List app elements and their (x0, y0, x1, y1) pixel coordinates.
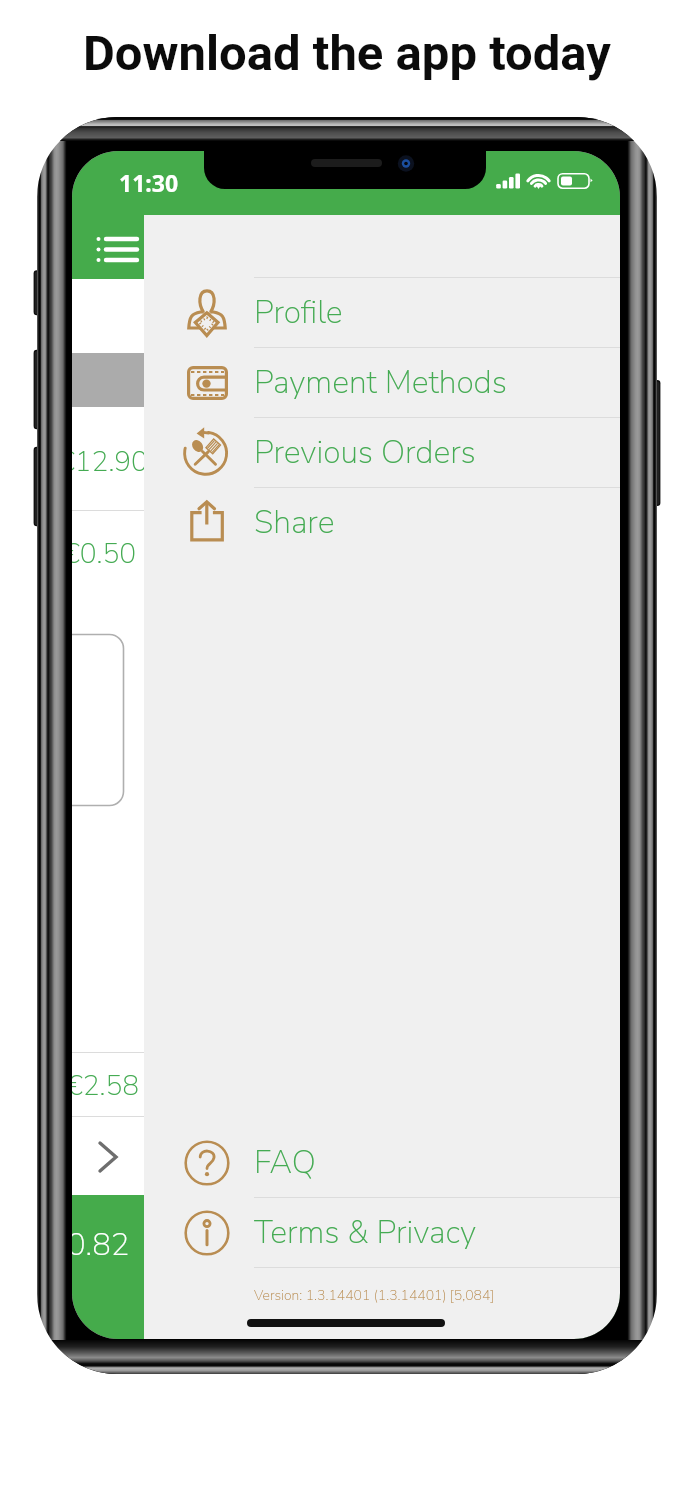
staticText: 0.82 (72, 1224, 130, 1266)
staticText: Profile (254, 291, 343, 335)
staticText: Terms & Privacy (254, 1211, 477, 1255)
staticText: Share (254, 501, 335, 545)
button[interactable]: Share (144, 488, 620, 557)
staticText: 11:30 (119, 167, 179, 198)
button[interactable]: Profile (144, 278, 620, 347)
button[interactable]: FAQ (144, 1128, 620, 1197)
staticText: Previous Orders (254, 431, 476, 475)
staticText: €12.90 (72, 443, 148, 481)
button[interactable]: Previous Orders (144, 418, 620, 487)
button[interactable]: Payment Methods (144, 348, 620, 417)
staticText: Download the app today (83, 25, 611, 82)
button[interactable]: Terms & Privacy (144, 1198, 620, 1267)
staticText: €2.58 (72, 1067, 140, 1105)
staticText: FAQ (254, 1141, 316, 1185)
staticText: Payment Methods (254, 361, 507, 405)
button[interactable]: Menu (88, 229, 148, 269)
staticText: Version: 1.3.14401 (1.3.14401) [5,084] (254, 1286, 495, 1305)
staticText: €0.50 (72, 535, 137, 573)
